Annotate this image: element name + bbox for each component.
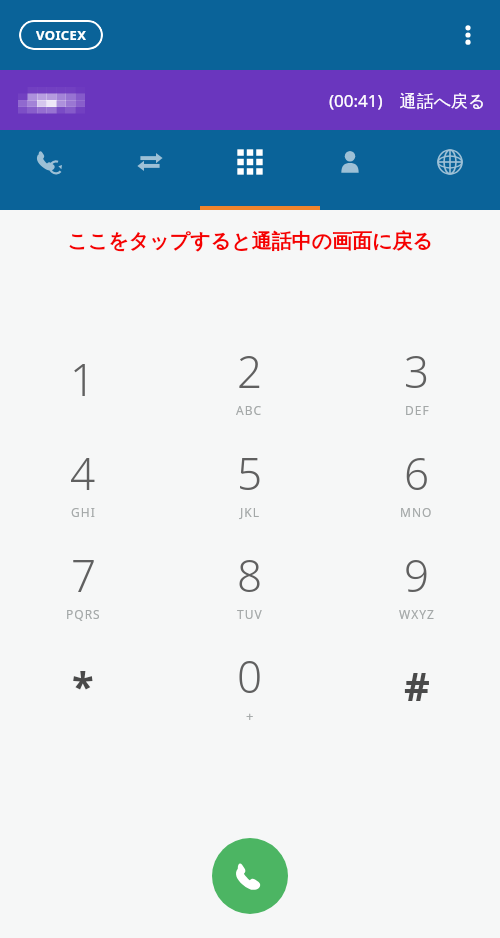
staticText: 6 [404,443,430,503]
staticText: 0 [237,646,263,706]
staticText: JKL [240,504,260,520]
staticText: 8 [237,545,263,605]
button[interactable]: Contacts [300,130,400,194]
staticText: 3 [404,341,430,401]
staticText: GHI [71,504,96,520]
staticText: + [246,707,255,725]
button[interactable]: # [333,634,500,736]
staticText: 5 [237,443,263,503]
button[interactable]: 2 [166,328,333,430]
button[interactable]: Web [400,130,500,194]
button[interactable]: 3 [333,328,500,430]
staticText: 9 [404,545,430,605]
staticText: 7 [71,545,97,605]
button[interactable]: 4 [0,430,166,532]
staticText: 1 [70,349,96,409]
button[interactable]: Call [212,838,288,914]
button[interactable]: 7 [0,532,166,634]
button[interactable]: 6 [333,430,500,532]
staticText: # [404,658,430,712]
button[interactable]: More options [446,13,490,57]
staticText: VOICEX [36,26,87,44]
button[interactable]: Transfer [100,130,200,194]
button[interactable]: (00:41) 通話へ戻る [0,70,500,130]
button[interactable]: 0 [166,634,333,736]
button[interactable]: 5 [166,430,333,532]
staticText: PQRS [66,606,101,622]
staticText: ABC [236,402,263,418]
staticText: MNO [400,504,433,520]
button[interactable]: 1 [0,328,166,430]
button[interactable]: * [0,634,166,736]
button[interactable]: VOICEX [19,20,103,50]
button[interactable]: 9 [333,532,500,634]
staticText: TUV [237,606,263,622]
staticText: * [72,658,94,712]
staticText: 4 [70,443,96,503]
button[interactable]: Recent calls [0,130,100,194]
staticText: WXYZ [399,606,435,622]
staticText: 2 [237,341,263,401]
staticText: DEF [405,402,430,418]
staticText: (00:41) 通話へ戻る [329,89,486,112]
staticText: ここをタップすると通話中の画面に戻る [67,229,433,254]
button[interactable]: Dialpad [200,130,300,194]
button[interactable]: 8 [166,532,333,634]
